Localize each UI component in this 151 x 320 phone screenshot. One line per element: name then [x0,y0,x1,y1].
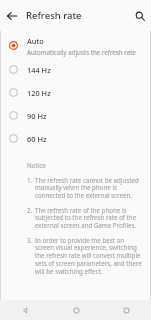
button[interactable]: Back [3,7,20,24]
staticText: 120 Hz [27,88,51,98]
staticText: Notice [27,161,46,169]
staticText: 2. [27,206,35,214]
staticText: The refresh rate cannot be adjusted manu… [35,176,143,200]
button[interactable]: Recent apps [101,300,151,320]
button[interactable]: 90 Hz [0,104,151,127]
staticText: Auto [27,36,44,46]
button[interactable]: Auto [0,33,151,58]
staticText: 60 Hz [27,134,47,144]
staticText: 3. [27,236,35,244]
staticText: The refresh rate of the phone is subject… [35,206,143,230]
staticText: 144 Hz [27,65,51,75]
staticText: 90 Hz [27,111,47,121]
staticText: In order to provide the best on screen v… [35,236,143,276]
button[interactable]: Search [131,7,148,24]
button[interactable]: 60 Hz [0,127,151,150]
button[interactable]: 120 Hz [0,81,151,104]
button[interactable]: Back [0,300,51,320]
button[interactable]: 144 Hz [0,58,151,81]
staticText: Refresh rate [26,9,82,22]
staticText: 1. [27,176,35,184]
button[interactable]: Home [51,300,101,320]
staticText: Automatically adjusts the refresh rate [27,48,136,56]
